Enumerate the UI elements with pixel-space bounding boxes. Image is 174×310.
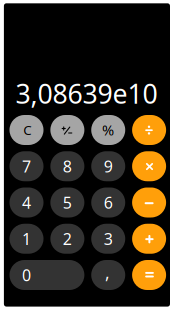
staticText: 2 [63, 228, 72, 249]
staticText: 8 [63, 156, 72, 177]
button[interactable]: 7 [9, 151, 43, 181]
button[interactable]: 1 [9, 224, 43, 254]
button[interactable]: 2 [50, 224, 84, 254]
button[interactable]: 9 [91, 151, 125, 181]
button[interactable]: Multiply [0, 0, 174, 310]
button[interactable]: Divide [0, 0, 174, 310]
button[interactable]: 5 [50, 187, 84, 217]
button[interactable]: % [91, 115, 125, 145]
staticText: 1 [22, 228, 31, 249]
button[interactable]: C [9, 115, 43, 145]
staticText: 4 [22, 192, 31, 213]
staticText: 3,08639e10 [15, 76, 157, 111]
staticText: C [23, 121, 31, 139]
staticText: 0 [22, 264, 31, 286]
staticText: 7 [22, 156, 31, 177]
button[interactable]: , [91, 260, 125, 290]
button[interactable]: Minus [0, 0, 174, 310]
button[interactable]: Plus or minus [0, 0, 174, 310]
button[interactable]: 4 [9, 187, 43, 217]
button[interactable]: Plus [0, 0, 174, 310]
staticText: 6 [104, 192, 113, 213]
button[interactable]: 3 [91, 224, 125, 254]
button[interactable]: 0 [9, 260, 84, 290]
button[interactable]: 8 [50, 151, 84, 181]
staticText: , [105, 261, 110, 284]
staticText: 5 [63, 192, 72, 213]
staticText: 9 [104, 156, 113, 177]
staticText: 3 [104, 228, 113, 249]
button[interactable]: 6 [91, 187, 125, 217]
staticText: % [102, 120, 114, 140]
button[interactable]: Equals [0, 0, 174, 310]
